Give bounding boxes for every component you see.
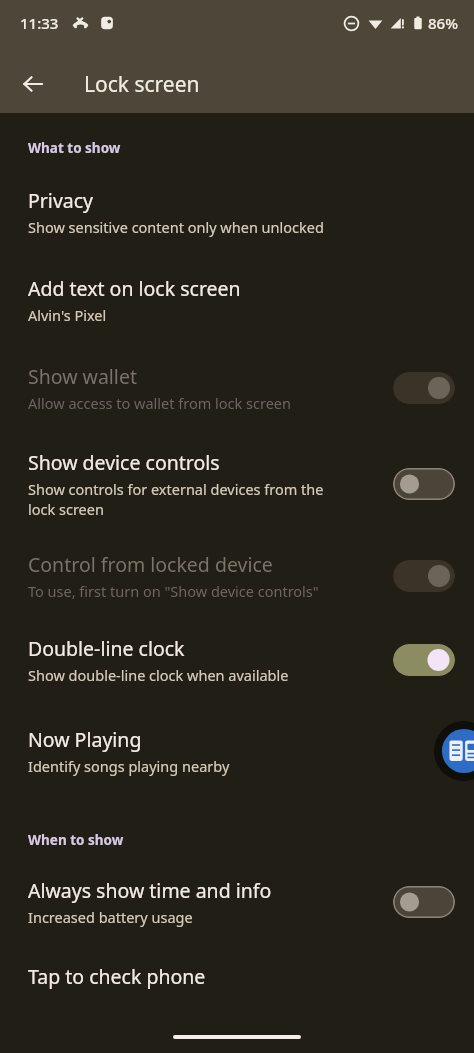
button[interactable]: Always show time and info <box>0 849 474 933</box>
staticText: Identify songs playing nearby <box>28 756 230 776</box>
staticText: Double-line clock <box>28 635 185 662</box>
button[interactable]: Privacy <box>0 157 474 243</box>
button[interactable]: Off <box>393 886 455 918</box>
staticText: Add text on lock screen <box>28 275 241 302</box>
button[interactable]: Tap to check phone <box>0 933 474 990</box>
button[interactable]: Double-line clock <box>0 607 474 691</box>
staticText: Privacy <box>28 187 94 214</box>
button[interactable]: On <box>393 560 455 592</box>
staticText: Control from locked device <box>28 551 273 578</box>
button[interactable]: Show device controls <box>0 419 474 525</box>
button[interactable]: On <box>393 644 455 676</box>
staticText: Show wallet <box>28 363 137 390</box>
button[interactable]: Now Playing <box>0 691 474 789</box>
staticText: Show sensitive content only when unlocke… <box>28 217 324 237</box>
staticText: What to show <box>28 139 121 157</box>
staticText: Show controls for external devices from … <box>28 479 324 519</box>
staticText: Always show time and info <box>28 877 272 904</box>
button[interactable]: On <box>393 372 455 404</box>
staticText: When to show <box>28 831 124 849</box>
button[interactable]: Now Playing app <box>432 719 474 783</box>
staticText: Allow access to wallet from lock screen <box>28 393 291 413</box>
staticText: Show device controls <box>28 449 220 476</box>
button[interactable]: Control from locked device <box>0 525 474 607</box>
staticText: Increased battery usage <box>28 907 193 927</box>
staticText: Alvin's Pixel <box>28 305 107 325</box>
staticText: Now Playing <box>28 726 142 753</box>
button[interactable]: Back <box>11 62 55 106</box>
staticText: Tap to check phone <box>28 963 206 990</box>
staticText: 86% <box>428 13 458 33</box>
staticText: Show double-line clock when available <box>28 665 289 685</box>
button[interactable]: Add text on lock screen <box>0 243 474 331</box>
button[interactable]: Off <box>393 468 455 500</box>
staticText: Lock screen <box>84 70 200 99</box>
staticText: To use, first turn on "Show device contr… <box>28 581 319 601</box>
button[interactable]: Show wallet <box>0 331 474 419</box>
staticText: 11:33 <box>20 13 59 33</box>
